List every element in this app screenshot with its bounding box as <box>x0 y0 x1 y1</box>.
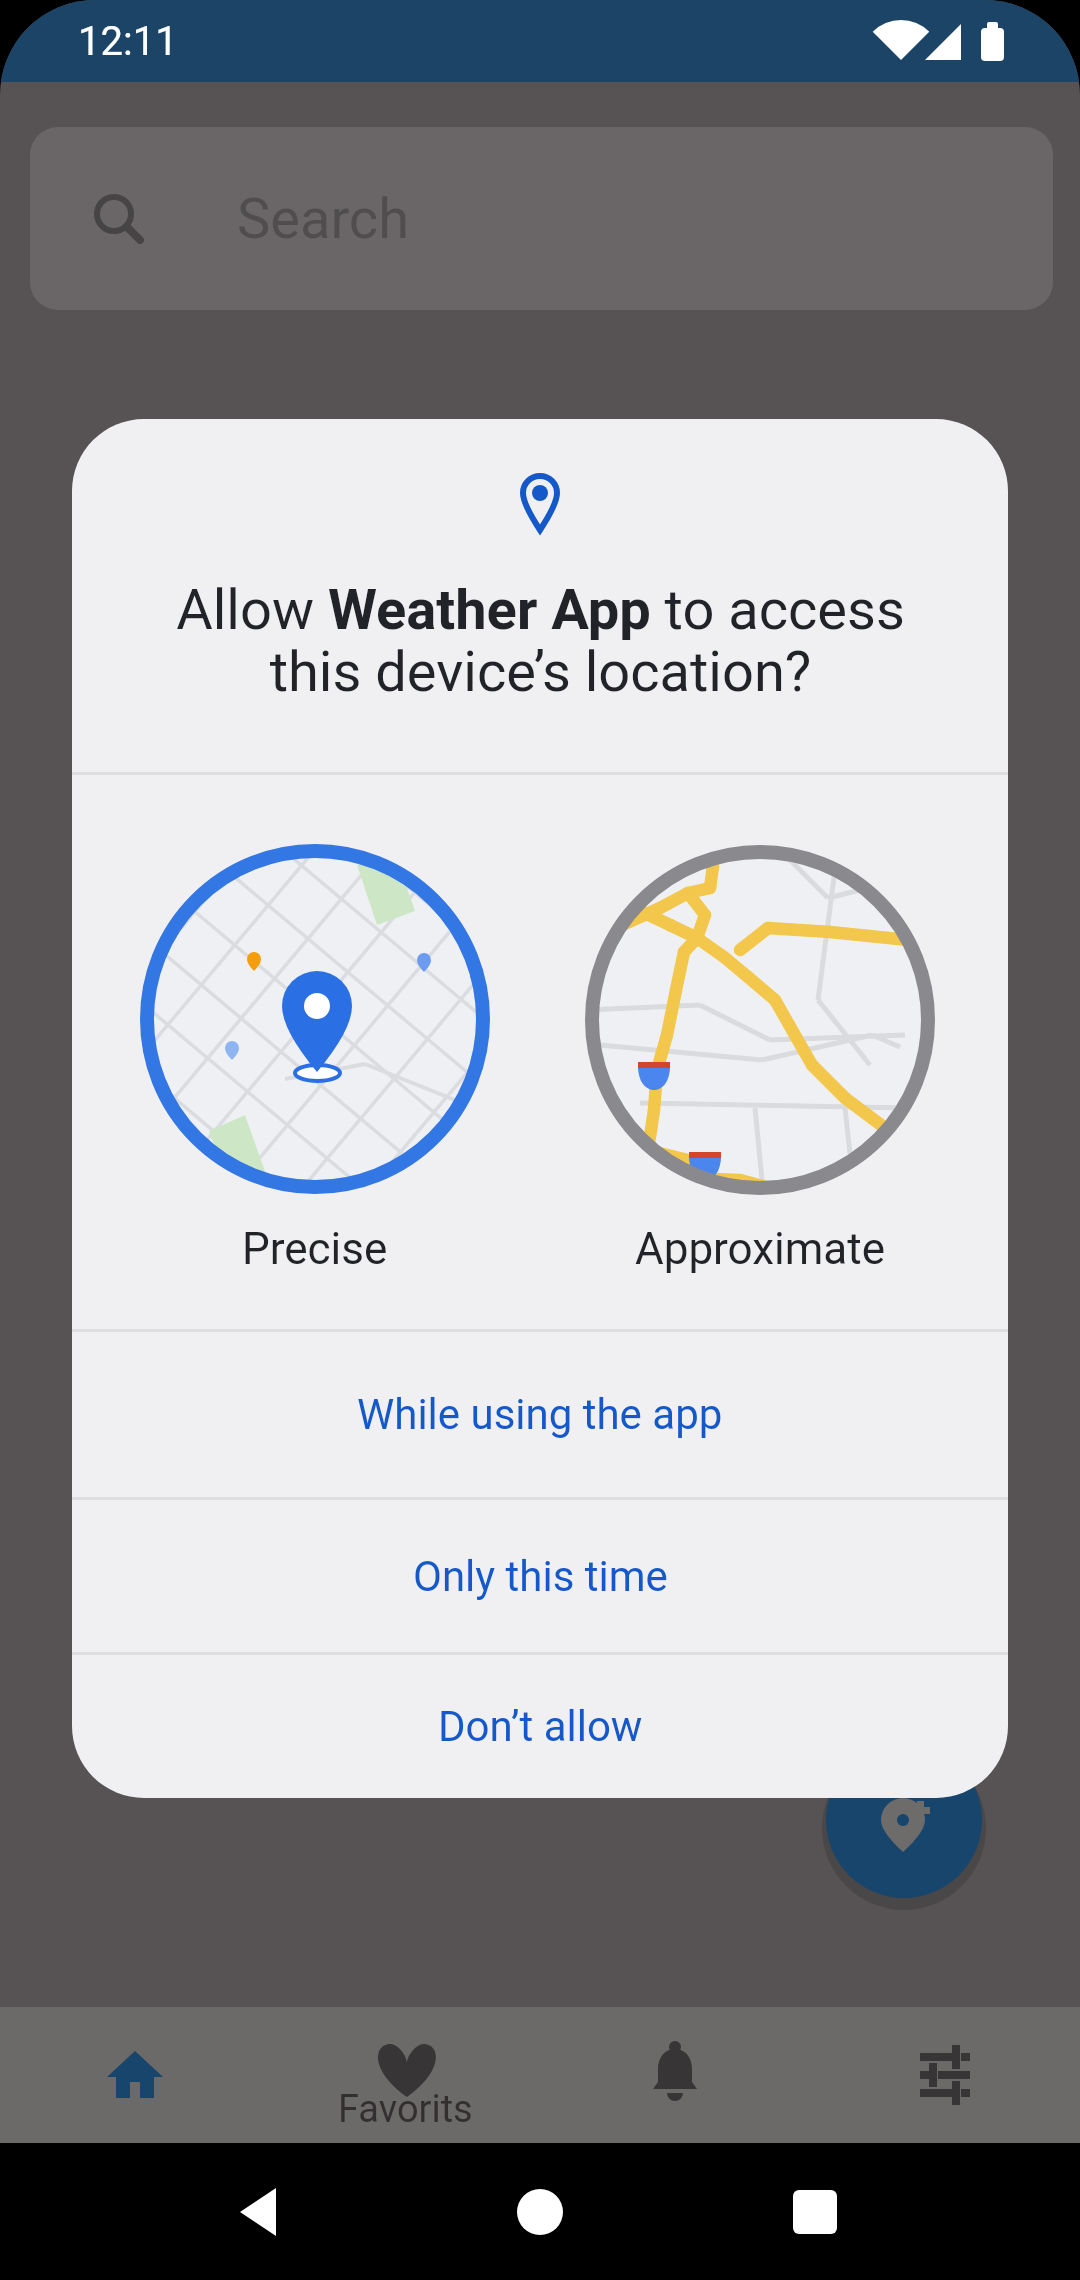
staticText: Search <box>237 186 410 252</box>
button[interactable] <box>810 2007 1080 2143</box>
button[interactable] <box>540 2007 810 2143</box>
staticText: Don’t allow <box>438 1702 643 1751</box>
button[interactable] <box>0 2007 270 2143</box>
staticText: Approximate <box>635 1223 886 1275</box>
staticText: Favorits <box>338 2087 473 2132</box>
staticText: Allow Weather App to access this device’… <box>176 577 905 705</box>
button[interactable] <box>140 844 490 1304</box>
button[interactable]: Don’t allow <box>72 1655 1008 1798</box>
staticText: 12:11 <box>78 18 178 65</box>
button[interactable]: Favorits <box>270 2007 540 2143</box>
staticText: Precise <box>242 1223 388 1275</box>
staticText: While using the app <box>357 1390 723 1439</box>
button[interactable]: While using the app <box>72 1332 1008 1497</box>
button[interactable] <box>585 844 935 1304</box>
button[interactable]: Search <box>30 127 1053 310</box>
button[interactable]: Only this time <box>72 1500 1008 1652</box>
staticText: Only this time <box>413 1552 668 1601</box>
button[interactable] <box>826 1742 982 1898</box>
